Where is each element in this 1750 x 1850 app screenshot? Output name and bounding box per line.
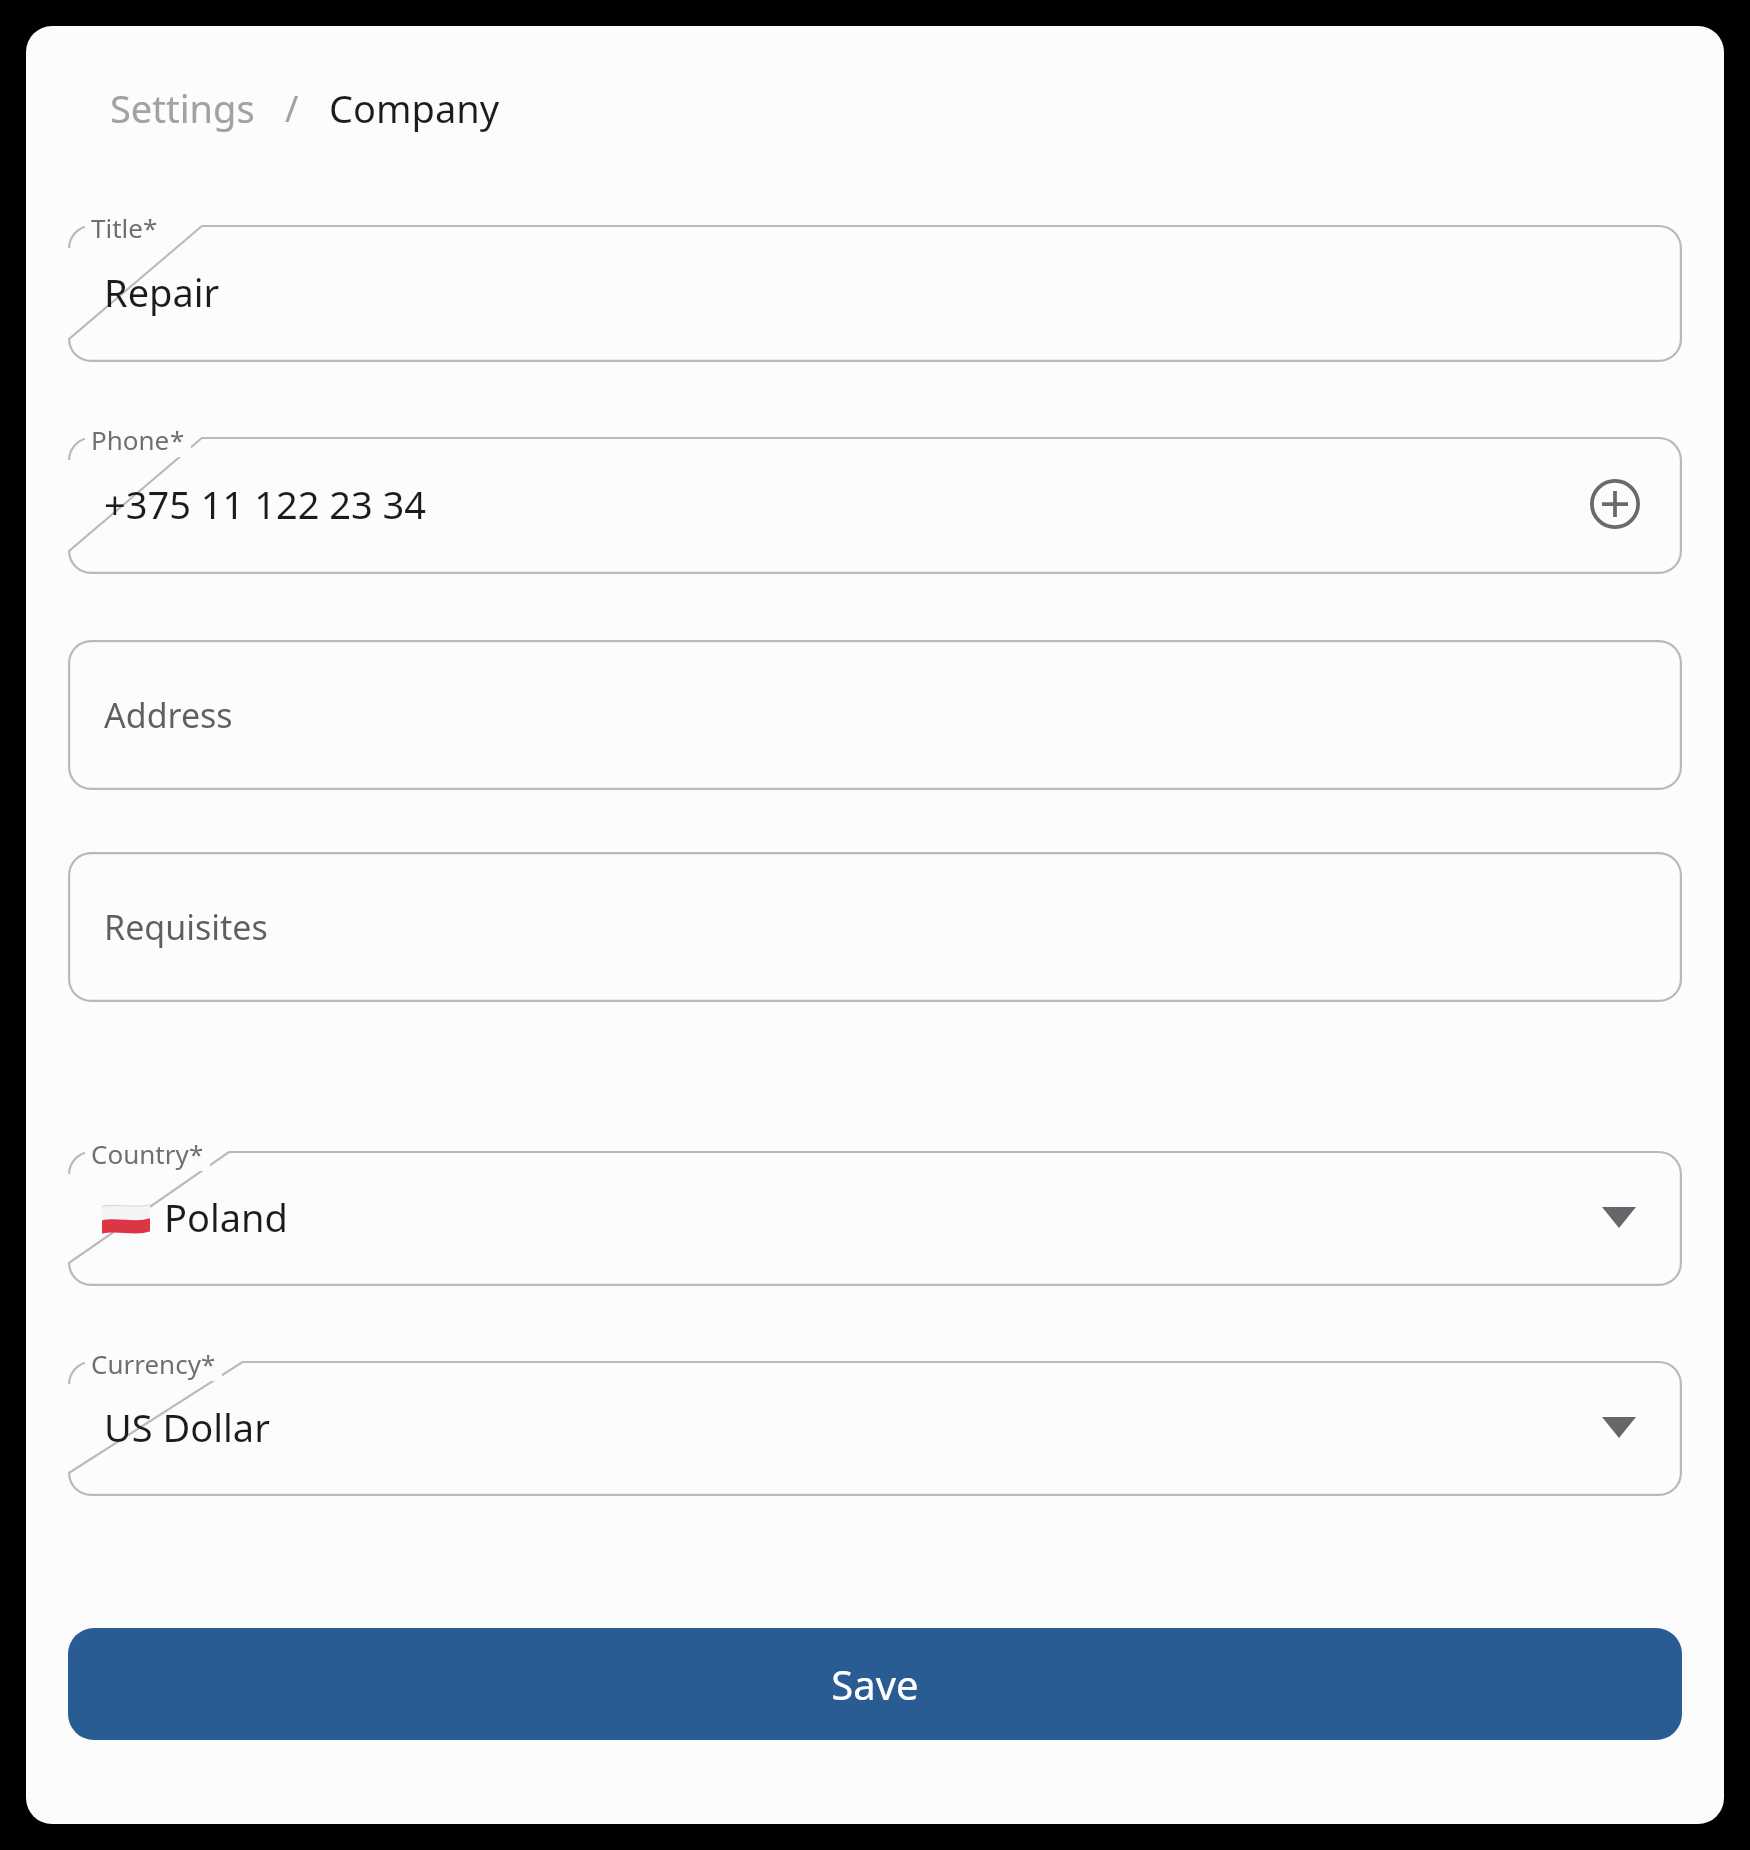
staticText: /: [285, 84, 299, 133]
staticText: *: [201, 1346, 216, 1381]
staticText: +375 11 122 23 34: [104, 478, 427, 530]
staticText: Company: [329, 82, 500, 134]
button[interactable]: Country: [68, 1138, 1682, 1286]
button[interactable]: Select country: [1594, 1199, 1644, 1236]
staticText: Repair: [104, 266, 220, 318]
button[interactable]: Select currency: [1594, 1409, 1644, 1446]
staticText: Currency: [91, 1346, 201, 1381]
staticText: Address: [104, 692, 233, 738]
staticText: US Dollar: [104, 1401, 270, 1453]
staticText: Country: [91, 1136, 189, 1171]
button[interactable]: Add phone number: [1584, 473, 1646, 535]
button[interactable]: Settings: [110, 82, 255, 134]
button[interactable]: Phone: [68, 424, 1682, 574]
button[interactable]: Address: [68, 640, 1682, 790]
staticText: *: [189, 1136, 204, 1171]
staticText: Poland: [164, 1191, 288, 1243]
button[interactable]: Currency: [68, 1348, 1682, 1496]
staticText: Title: [91, 210, 143, 245]
staticText: *: [143, 210, 158, 245]
staticText: *: [170, 422, 185, 457]
staticText: Phone: [91, 422, 170, 457]
button[interactable]: Requisites: [68, 852, 1682, 1002]
staticText: Requisites: [104, 904, 268, 950]
staticText: Save: [831, 1657, 919, 1711]
button[interactable]: Save: [68, 1628, 1682, 1740]
button[interactable]: Title: [68, 212, 1682, 362]
